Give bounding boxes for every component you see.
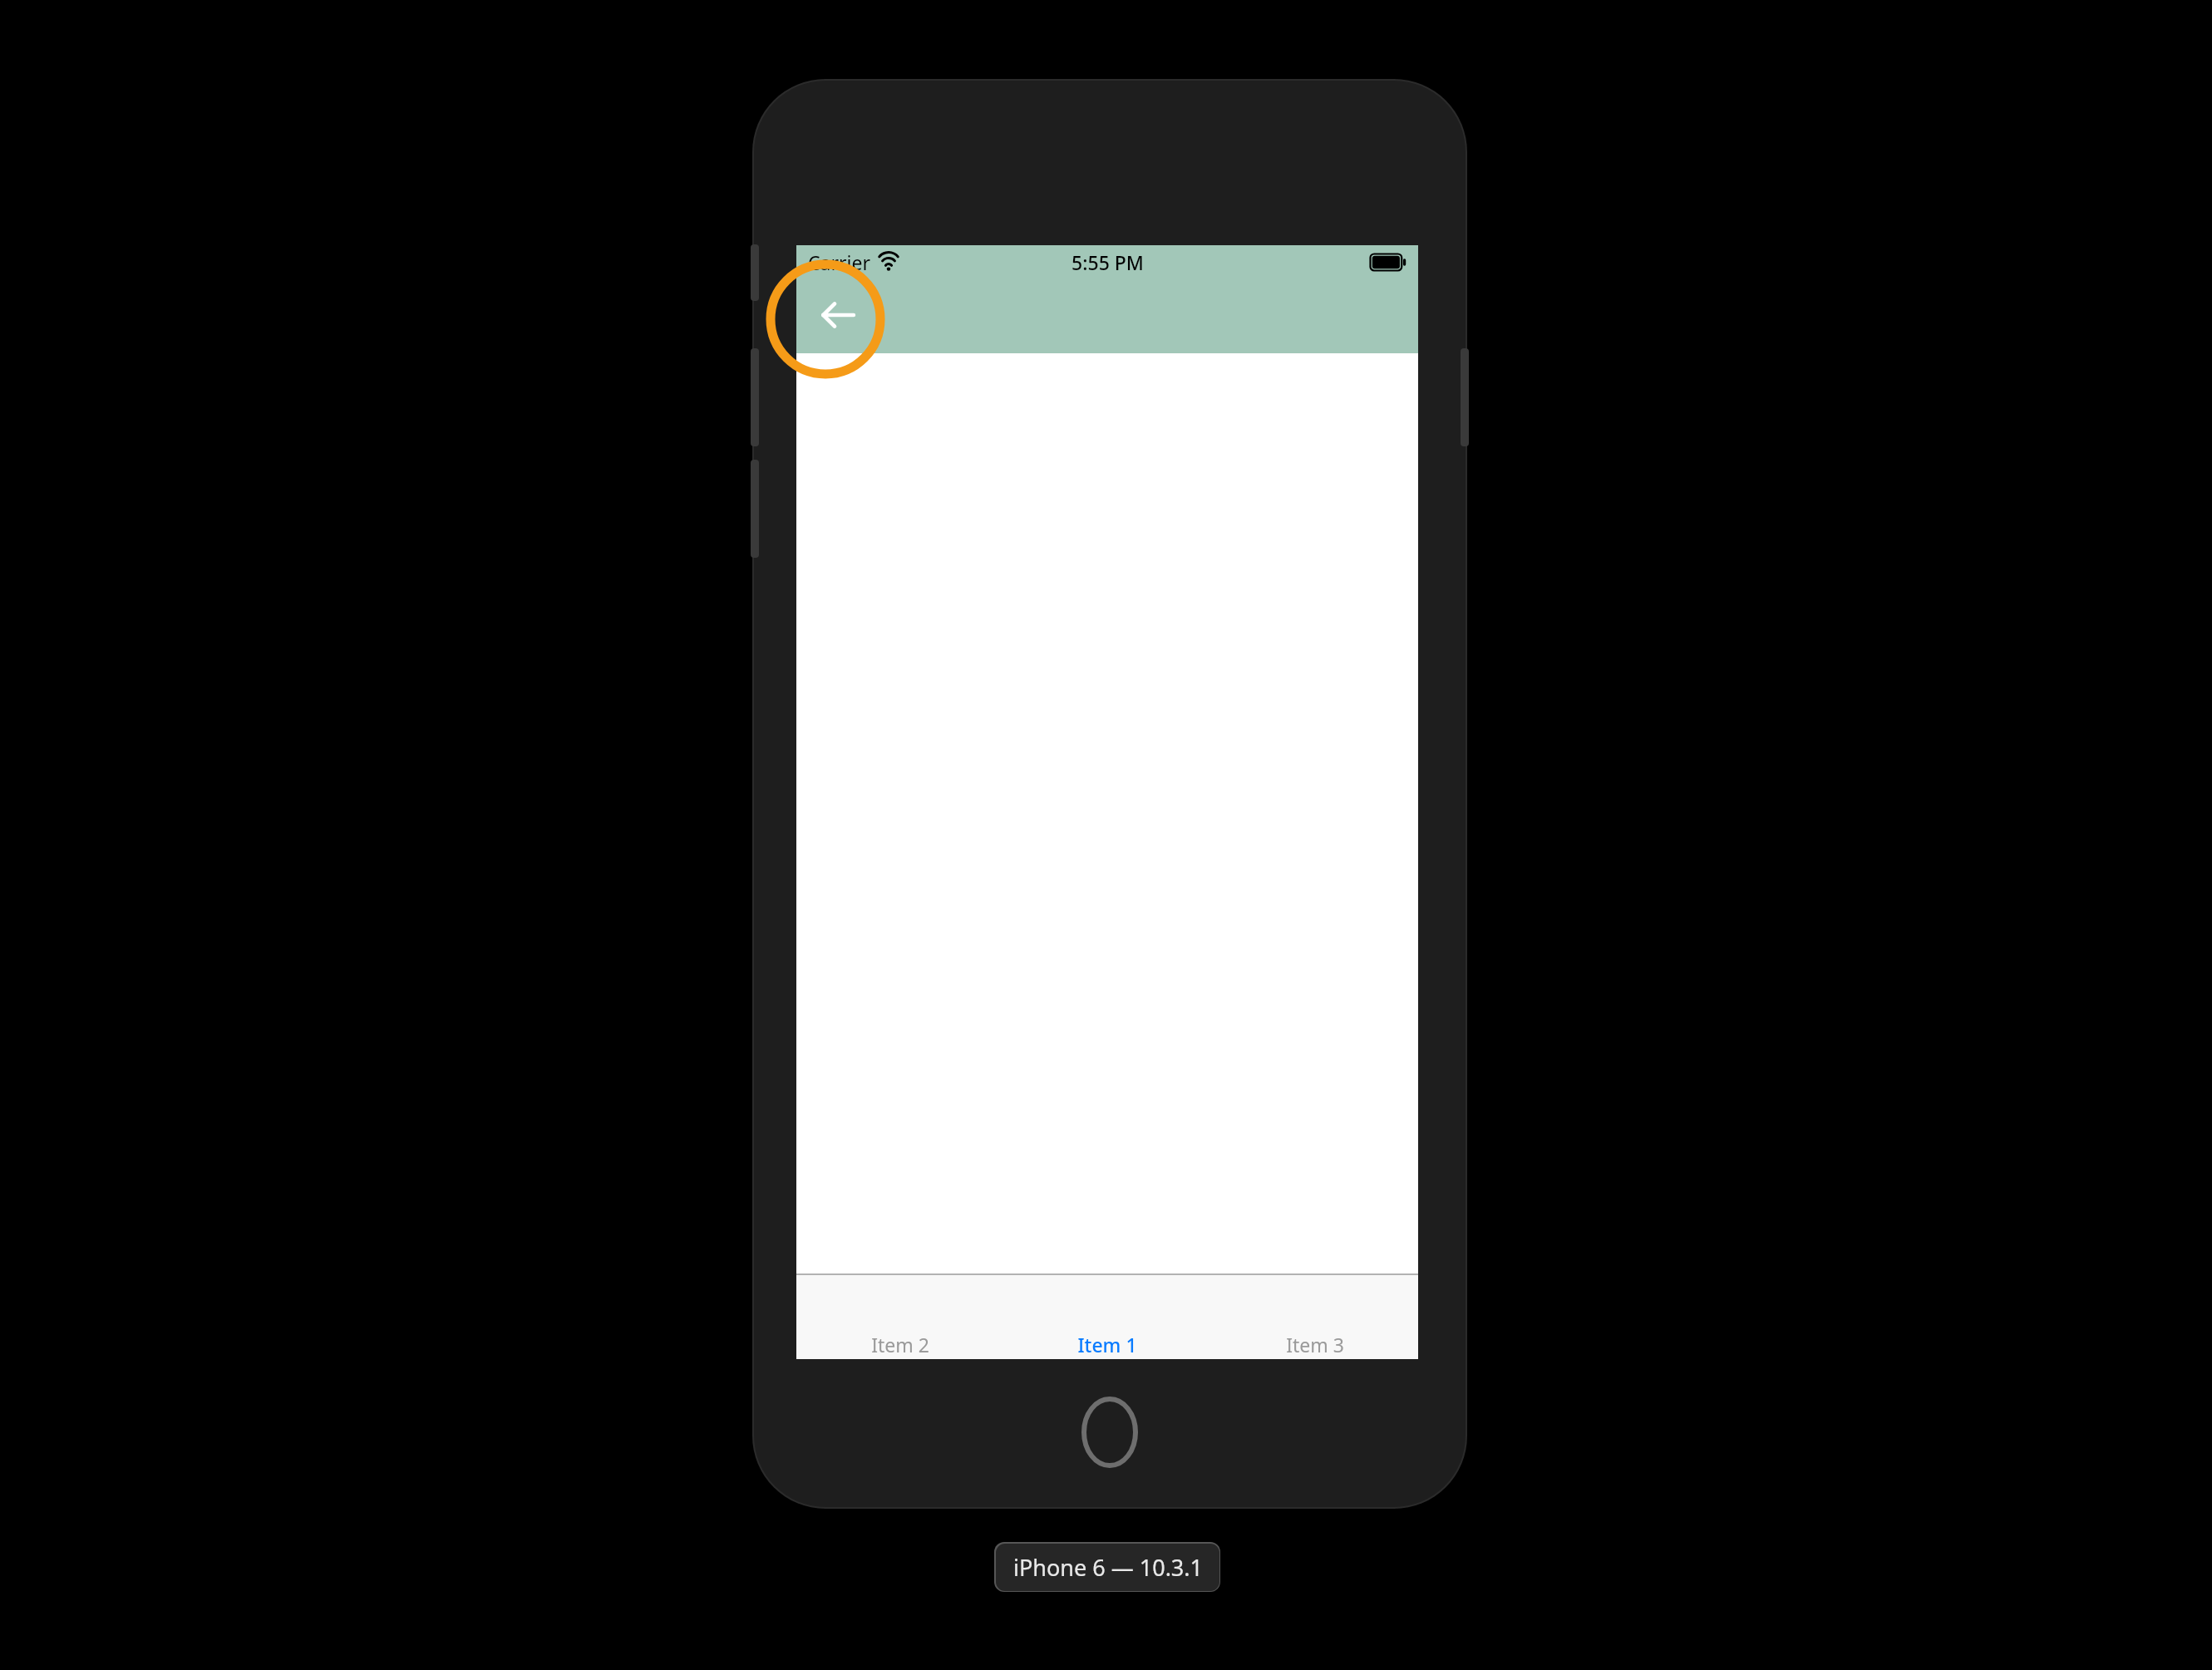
button[interactable]: Item 3 (1211, 1273, 1418, 1359)
staticText: Item 2 (871, 1332, 929, 1357)
button[interactable]: Item 2 (796, 1273, 1003, 1359)
staticText: iPhone 6 — 10.3.1 (1013, 1552, 1203, 1583)
staticText: 5:55 PM (1072, 249, 1144, 275)
staticText: Item 1 (1077, 1332, 1137, 1357)
staticText: Item 3 (1286, 1332, 1344, 1357)
button[interactable]: Item 1 (1003, 1273, 1211, 1359)
button[interactable]: Back (803, 280, 873, 350)
staticText: Carrier (808, 249, 870, 275)
other: Home (1081, 1397, 1138, 1468)
